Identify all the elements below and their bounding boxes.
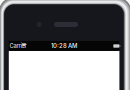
staticText: Carrier bbox=[9, 42, 26, 49]
staticText: 10:28 AM bbox=[51, 42, 77, 49]
